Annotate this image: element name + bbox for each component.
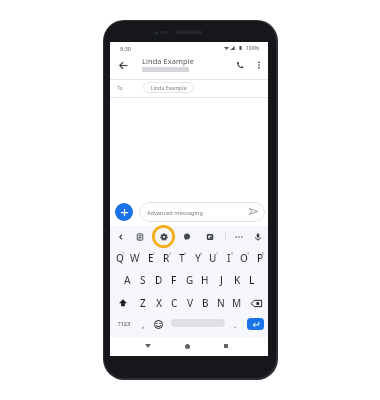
staticText: S <box>140 273 146 287</box>
button[interactable]: Recents <box>216 336 236 356</box>
staticText: 9:30 <box>120 45 131 52</box>
staticText: F <box>171 273 177 287</box>
staticText: , <box>142 319 145 330</box>
staticText: T <box>179 251 185 265</box>
button[interactable]: Stickers <box>180 230 194 244</box>
button[interactable]: Enter <box>247 318 264 330</box>
button[interactable]: More <box>232 230 246 244</box>
button[interactable]: Home <box>177 336 197 356</box>
staticText: U <box>209 251 217 265</box>
staticText: B <box>202 296 209 310</box>
button[interactable]: Q <box>112 248 128 268</box>
button[interactable]: Z <box>135 293 151 313</box>
button[interactable]: B <box>197 293 213 313</box>
button[interactable]: V <box>182 293 198 313</box>
button[interactable]: Y <box>190 248 206 268</box>
staticText: 9 <box>247 251 250 256</box>
button[interactable]: D <box>151 270 167 290</box>
staticText: 100% <box>246 45 259 52</box>
staticText: D <box>155 273 163 287</box>
staticText: ?123 <box>118 320 131 328</box>
button[interactable]: Advanced messaging <box>139 202 265 222</box>
staticText: C <box>171 296 178 310</box>
staticText: Y <box>195 251 201 265</box>
button[interactable]: . <box>228 314 242 334</box>
staticText: A <box>124 273 131 287</box>
staticText: 2 <box>138 251 141 256</box>
button[interactable]: A <box>119 270 135 290</box>
staticText: V <box>187 296 194 310</box>
button[interactable]: Emoji <box>151 314 165 334</box>
button[interactable]: X <box>151 293 167 313</box>
staticText: 3 <box>153 251 156 256</box>
button[interactable]: L <box>244 270 260 290</box>
staticText: E <box>148 251 154 265</box>
staticText: 0 <box>262 251 265 256</box>
staticText: 4 <box>169 251 172 256</box>
button[interactable]: GIF <box>203 230 217 244</box>
button[interactable]: Voice input <box>251 230 265 244</box>
staticText: K <box>234 273 241 287</box>
staticText: O <box>240 251 248 265</box>
button[interactable]: Add attachment <box>115 203 133 221</box>
staticText: To <box>117 85 123 92</box>
button[interactable]: P <box>252 248 268 268</box>
button[interactable]: Shift <box>114 293 132 313</box>
staticText: G <box>186 273 194 287</box>
staticText: M <box>232 296 242 310</box>
button[interactable]: Hide keyboard <box>138 336 158 356</box>
staticText: Linda Example <box>142 56 194 66</box>
button[interactable]: C <box>166 293 182 313</box>
button[interactable]: G <box>182 270 198 290</box>
button[interactable]: ?123 <box>113 314 135 334</box>
staticText: I <box>227 251 231 265</box>
button[interactable]: , <box>136 314 150 334</box>
staticText: 1 <box>122 251 125 256</box>
staticText: P <box>257 251 264 265</box>
button[interactable]: N <box>213 293 229 313</box>
button[interactable]: Call <box>230 55 250 75</box>
staticText: 8 <box>231 251 234 256</box>
button[interactable]: T <box>174 248 190 268</box>
staticText: H <box>201 273 209 287</box>
button[interactable]: Settings <box>157 230 171 244</box>
staticText: X <box>156 296 163 310</box>
staticText: L <box>249 273 255 287</box>
button[interactable]: E <box>143 248 159 268</box>
staticText: R <box>163 251 170 265</box>
button[interactable]: W <box>127 248 143 268</box>
staticText: Q <box>116 251 124 265</box>
button[interactable]: H <box>197 270 213 290</box>
button[interactable]: S <box>135 270 151 290</box>
staticText: Z <box>140 296 146 310</box>
button[interactable]: Back <box>114 230 128 244</box>
staticText: Advanced messaging <box>147 209 203 217</box>
button[interactable]: U <box>205 248 221 268</box>
staticText: Linda Example <box>151 84 187 91</box>
button[interactable]: F <box>166 270 182 290</box>
button[interactable]: Back <box>113 55 133 75</box>
staticText: 7 <box>216 251 219 256</box>
button[interactable]: R <box>158 248 174 268</box>
staticText: N <box>217 296 225 310</box>
staticText: W <box>130 251 140 265</box>
button[interactable]: I <box>221 248 237 268</box>
button[interactable]: Backspace <box>247 293 265 313</box>
staticText: 6 <box>200 251 203 256</box>
staticText: 5 <box>184 251 187 256</box>
button[interactable]: More options <box>250 56 268 74</box>
staticText: J <box>220 273 223 287</box>
button[interactable]: Linda Example <box>143 82 194 93</box>
button[interactable]: Clipboard <box>133 230 147 244</box>
staticText: . <box>234 319 237 330</box>
button[interactable]: M <box>229 293 245 313</box>
button[interactable]: O <box>236 248 252 268</box>
button[interactable]: Space <box>171 319 225 327</box>
button[interactable]: K <box>229 270 245 290</box>
button[interactable]: J <box>213 270 229 290</box>
